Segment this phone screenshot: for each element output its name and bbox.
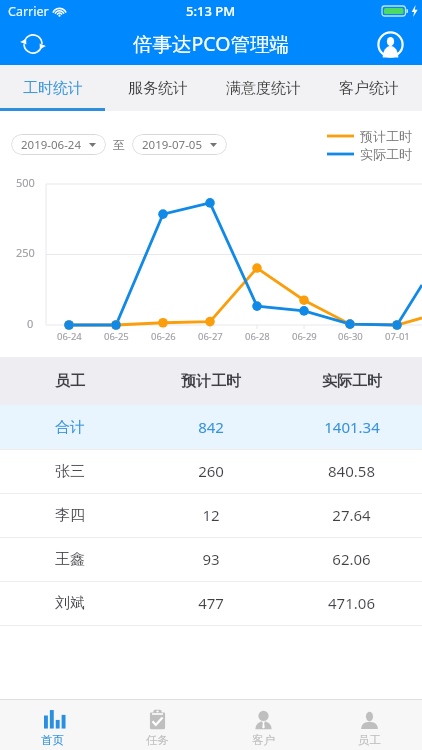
staticText: 250 [16,245,35,260]
staticText: 客户 [252,733,275,747]
staticText: 06-26 [151,330,176,343]
staticText: 至 [113,137,125,152]
staticText: 477 [198,593,224,613]
button[interactable]: 工时统计 [0,65,105,111]
staticText: 预计工时 [181,372,241,391]
staticText: 实际工时 [360,146,412,162]
staticText: 5:13 PM [186,2,236,20]
button[interactable]: 刘斌 [0,581,422,625]
staticText: 500 [16,175,35,190]
staticText: 刘斌 [55,594,85,613]
staticText: 06-29 [292,330,317,343]
button[interactable]: Refresh [17,28,49,60]
staticText: 27.64 [332,505,371,525]
staticText: 471.06 [328,593,375,613]
button[interactable]: Account [375,29,405,59]
staticText: 06-27 [198,330,223,343]
staticText: 62.06 [332,549,371,569]
staticText: 王鑫 [55,550,85,569]
staticText: 842 [198,417,224,437]
staticText: 07-01 [385,330,410,343]
staticText: 2019-07-05 [142,137,203,153]
staticText: 任务 [146,733,169,747]
staticText: 93 [202,549,220,569]
button[interactable]: 客户统计 [316,65,422,111]
staticText: 李四 [55,506,85,525]
button[interactable]: 张三 [0,449,422,493]
staticText: 1401.34 [324,417,380,437]
button[interactable]: 2019-06-24 [11,134,106,155]
staticText: 张三 [55,462,85,481]
staticText: 服务统计 [128,79,188,98]
staticText: 840.58 [328,461,375,481]
button[interactable]: 首页 [0,700,105,750]
staticText: 首页 [41,733,64,747]
staticText: 06-24 [57,330,82,343]
button[interactable]: 李四 [0,493,422,537]
button[interactable]: 满意度统计 [210,65,316,111]
staticText: 满意度统计 [226,79,301,98]
staticText: 员工 [55,372,85,391]
button[interactable]: 2019-07-05 [132,134,227,155]
staticText: 12 [202,505,220,525]
staticText: 工时统计 [23,79,83,98]
staticText: 06-25 [104,330,129,343]
staticText: 06-30 [338,330,363,343]
staticText: 06-28 [245,330,270,343]
staticText: 260 [198,461,224,481]
staticText: 0 [27,316,34,331]
staticText: 员工 [358,733,381,747]
staticText: 合计 [55,418,85,437]
button[interactable]: 王鑫 [0,537,422,581]
button[interactable]: 合计 [0,405,422,449]
staticText: 预计工时 [360,128,412,144]
staticText: 客户统计 [339,79,399,98]
button[interactable]: 员工 [316,700,422,750]
button[interactable]: 任务 [105,700,210,750]
staticText: Carrier [8,3,49,20]
staticText: 倍事达PCO管理端 [133,30,289,57]
staticText: 2019-06-24 [21,137,82,153]
button[interactable]: 客户 [210,700,316,750]
button[interactable]: 服务统计 [105,65,210,111]
staticText: 实际工时 [322,372,382,391]
